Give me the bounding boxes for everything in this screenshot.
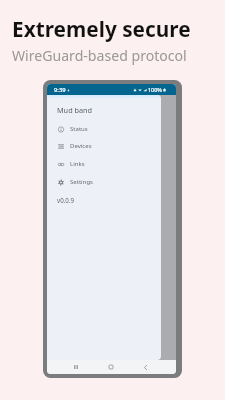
button[interactable]: Settings xyxy=(47,175,161,189)
staticText: Status xyxy=(70,125,88,133)
button[interactable]: Status xyxy=(47,122,161,136)
staticText: 100% xyxy=(148,86,162,93)
staticText: Settings xyxy=(70,178,94,186)
staticText: Links xyxy=(70,160,85,168)
button[interactable]: Links xyxy=(47,157,161,171)
button[interactable]: Devices xyxy=(47,139,161,153)
staticText: Extremely secure xyxy=(12,15,191,43)
staticText: v0.0.9 xyxy=(57,196,75,204)
button[interactable]: Back xyxy=(128,360,163,374)
staticText: Devices xyxy=(70,142,92,150)
button[interactable]: Home xyxy=(93,360,128,374)
staticText: Mud band xyxy=(57,105,93,115)
staticText: 9:39 xyxy=(54,86,66,94)
button[interactable]: Recent apps xyxy=(58,360,93,374)
staticText: WireGuard-based protocol xyxy=(12,46,187,65)
